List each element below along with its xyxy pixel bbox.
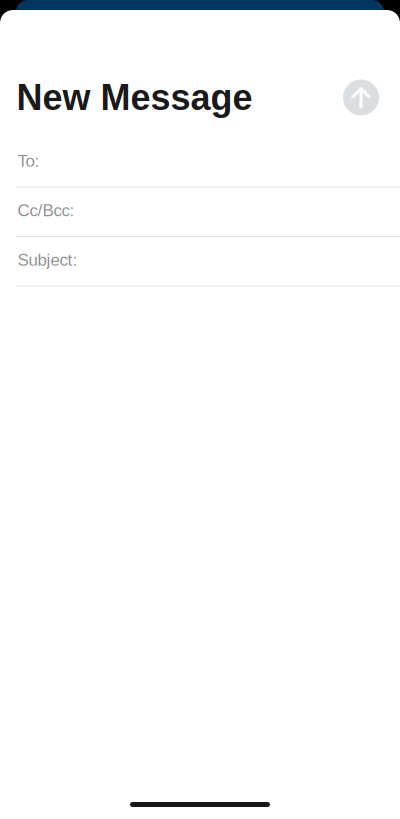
staticText: Subject: — [17, 250, 77, 269]
staticText: Cc/Bcc: — [17, 201, 74, 220]
staticText: New Message — [17, 77, 253, 118]
staticText: To: — [17, 151, 39, 170]
button[interactable]: Send — [343, 79, 379, 115]
